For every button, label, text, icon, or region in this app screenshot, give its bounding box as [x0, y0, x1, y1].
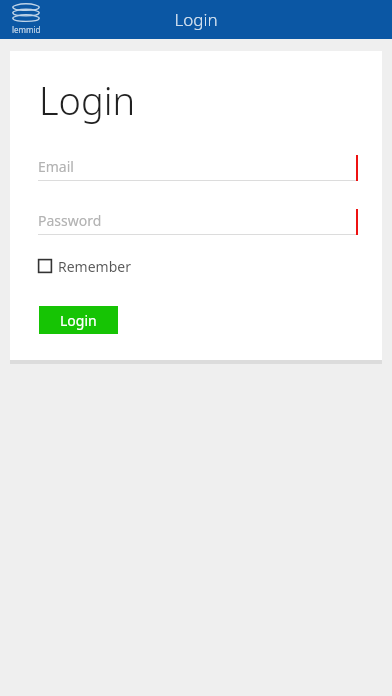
staticText: Email — [38, 157, 74, 176]
button[interactable]: Remember — [38, 254, 131, 278]
staticText: Login — [39, 74, 136, 126]
staticText: Login — [174, 8, 218, 31]
staticText: Remember — [58, 257, 131, 276]
button[interactable]: Login — [39, 306, 118, 334]
staticText: Login — [60, 311, 97, 330]
button[interactable]: Email — [38, 151, 358, 181]
staticText: Password — [38, 211, 102, 230]
button[interactable]: lemmid home — [8, 2, 44, 37]
staticText: lemmid — [12, 24, 41, 35]
button[interactable]: Password — [38, 205, 358, 235]
